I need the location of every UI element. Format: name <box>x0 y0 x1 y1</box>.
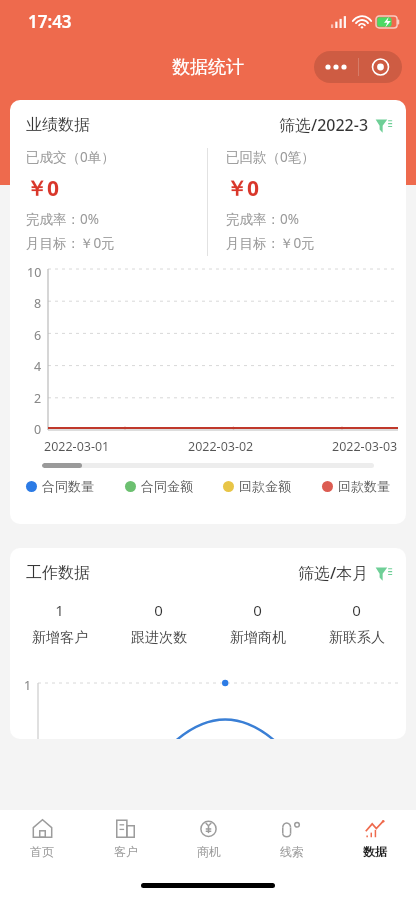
staticText: 8 <box>34 295 42 312</box>
staticText: 6 <box>34 327 42 344</box>
staticText: 首页 <box>30 844 54 859</box>
staticText: 0 <box>253 600 262 620</box>
staticText: ￥0 <box>226 174 260 203</box>
staticText: 新联系人 <box>329 629 385 647</box>
staticText: 数据 <box>363 844 387 859</box>
staticText: 线索 <box>280 844 304 859</box>
staticText: 回款数量 <box>338 478 390 494</box>
button[interactable]: 商机 <box>167 810 250 866</box>
button[interactable]: 0 <box>208 600 307 647</box>
staticText: 2022-03-02 <box>188 438 254 455</box>
staticText: 筛选/2022-3 <box>279 114 369 136</box>
staticText: 合同金额 <box>141 478 193 494</box>
button[interactable]: 客户 <box>84 810 167 866</box>
staticText: 跟进次数 <box>131 629 187 647</box>
staticText: 月目标：￥0元 <box>26 234 115 252</box>
button[interactable]: 0 <box>109 600 208 647</box>
button[interactable]: 数据 <box>333 810 416 866</box>
staticText: 2022-03-01 <box>44 438 110 455</box>
staticText: 数据统计 <box>172 56 244 79</box>
staticText: 客户 <box>114 844 138 859</box>
button[interactable]: More and Close <box>314 51 402 83</box>
button[interactable]: 线索 <box>250 810 333 866</box>
staticText: 2022-03-03 <box>332 438 398 455</box>
staticText: 0 <box>352 600 361 620</box>
staticText: 合同数量 <box>42 478 94 494</box>
staticText: 业绩数据 <box>26 115 90 135</box>
staticText: 2 <box>34 390 42 407</box>
staticText: 0 <box>154 600 163 620</box>
staticText: 完成率：0% <box>26 210 99 228</box>
staticText: 17:43 <box>28 10 72 33</box>
staticText: ￥0 <box>26 174 60 203</box>
button[interactable]: 0 <box>307 600 406 647</box>
staticText: 4 <box>34 358 42 375</box>
button[interactable]: 首页 <box>0 810 84 866</box>
staticText: 筛选/本月 <box>298 562 369 584</box>
staticText: 已回款（0笔） <box>226 148 315 166</box>
staticText: 1 <box>55 600 64 620</box>
staticText: 商机 <box>197 844 221 859</box>
staticText: 工作数据 <box>26 563 90 583</box>
staticText: 月目标：￥0元 <box>226 234 315 252</box>
staticText: 已成交（0单） <box>26 148 115 166</box>
staticText: 1 <box>24 677 32 694</box>
button[interactable]: 1 <box>10 600 109 647</box>
staticText: 回款金额 <box>239 478 291 494</box>
staticText: 完成率：0% <box>226 210 299 228</box>
staticText: 新增商机 <box>230 629 286 647</box>
button[interactable]: 筛选/2022-3 <box>279 114 392 136</box>
staticText: 新增客户 <box>32 629 88 647</box>
button[interactable]: 筛选/本月 <box>298 562 392 584</box>
staticText: 0 <box>34 421 42 438</box>
staticText: 10 <box>27 264 42 281</box>
